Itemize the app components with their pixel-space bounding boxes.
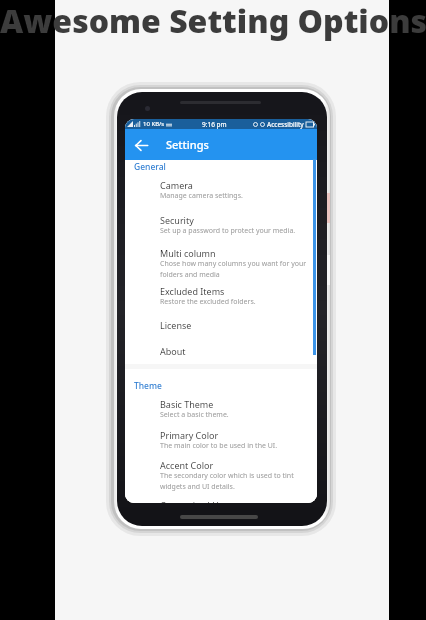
button[interactable]: Security xyxy=(125,214,317,247)
staticText: License xyxy=(160,319,192,331)
button[interactable]: Customized Hue xyxy=(125,499,317,503)
button[interactable]: License xyxy=(125,319,317,345)
staticText: Set up a password to protect your media. xyxy=(160,226,296,236)
staticText: Restore the excluded folders. xyxy=(160,297,256,307)
button[interactable]: Primary Color xyxy=(125,429,317,459)
staticText: Excluded Items xyxy=(160,285,225,297)
staticText: General xyxy=(134,161,166,173)
staticText: The main color to be used in the UI. xyxy=(160,441,278,451)
staticText: Primary Color xyxy=(160,429,219,441)
button[interactable]: Multi column xyxy=(125,247,317,285)
staticText: Theme xyxy=(134,380,162,392)
staticText: Camera xyxy=(160,179,193,191)
button[interactable]: Camera xyxy=(125,179,317,214)
staticText: Security xyxy=(160,214,194,226)
button[interactable]: About xyxy=(125,345,317,364)
staticText: The secondary color which is used to tin… xyxy=(160,471,308,491)
staticText: 9:16 pm xyxy=(202,120,227,129)
staticText: Settings xyxy=(166,137,209,152)
staticText: Chose how many columns you want for your… xyxy=(160,259,308,279)
staticText: Manage camera settings. xyxy=(160,191,243,201)
button[interactable]: Back xyxy=(125,129,317,160)
staticText: 10 KB/s xyxy=(143,120,165,128)
staticText: About xyxy=(160,345,186,357)
staticText: Awesome Setting Options xyxy=(0,0,426,43)
button[interactable]: Excluded Items xyxy=(125,285,317,319)
button[interactable]: Back xyxy=(132,136,150,154)
button[interactable]: Accent Color xyxy=(125,459,317,499)
staticText: Customized Hue xyxy=(160,499,230,503)
staticText: Basic Theme xyxy=(160,398,214,410)
staticText: Accent Color xyxy=(160,459,214,471)
staticText: Accessibility xyxy=(267,120,304,129)
staticText: Select a basic theme. xyxy=(160,410,229,420)
button[interactable]: Basic Theme xyxy=(125,398,317,429)
staticText: Multi column xyxy=(160,247,216,259)
